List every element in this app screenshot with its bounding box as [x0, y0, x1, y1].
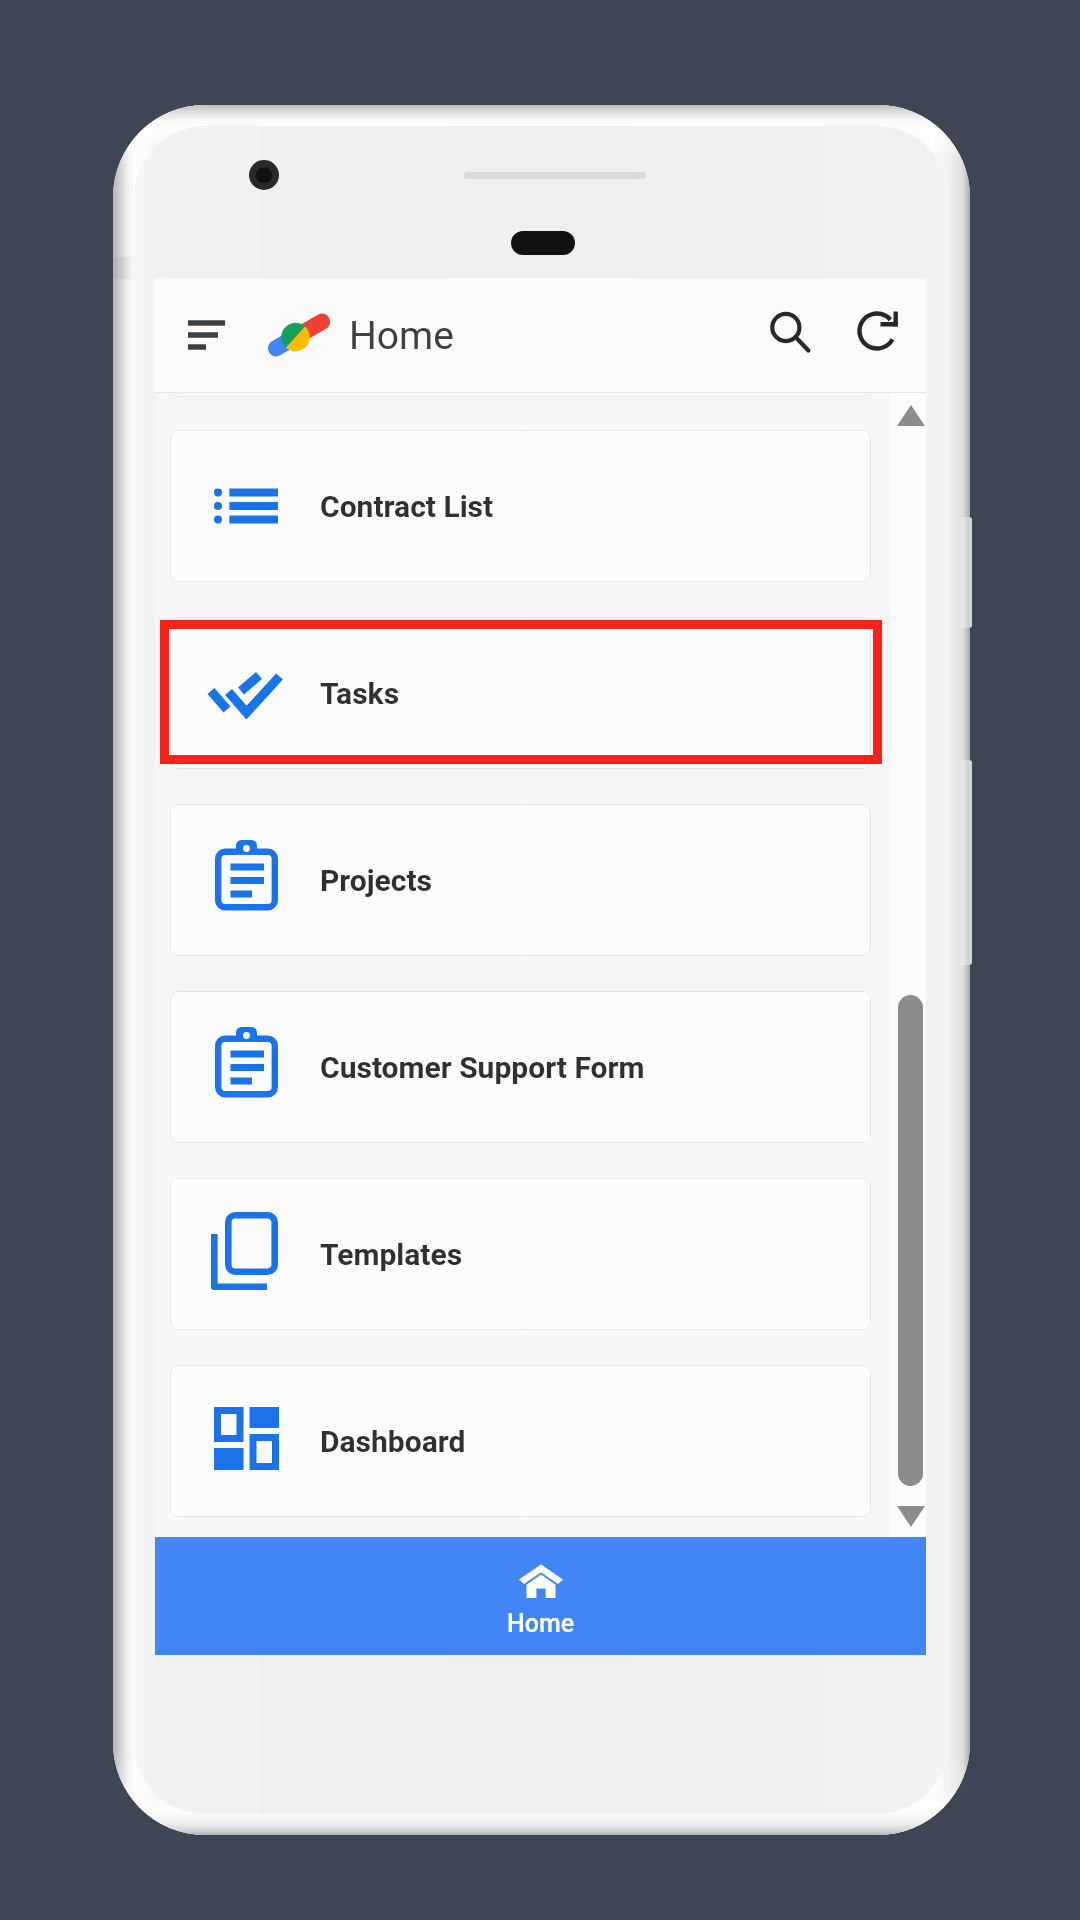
- button[interactable]: Home: [155, 1537, 926, 1655]
- button[interactable]: Dashboard: [170, 1365, 871, 1517]
- staticText: Templates: [320, 1237, 463, 1272]
- button[interactable]: Tasks: [170, 617, 871, 769]
- staticText: Home: [349, 313, 454, 359]
- button[interactable]: Templates: [170, 1178, 871, 1330]
- staticText: Projects: [320, 863, 433, 898]
- button[interactable]: Contract List: [170, 430, 871, 582]
- button[interactable]: Menu: [164, 300, 249, 370]
- button[interactable]: [170, 393, 871, 397]
- staticText: Dashboard: [320, 1424, 466, 1459]
- staticText: Tasks: [320, 676, 400, 711]
- button[interactable]: Refresh: [842, 295, 912, 365]
- button[interactable]: Projects: [170, 804, 871, 956]
- staticText: Customer Support Form: [320, 1050, 645, 1085]
- button[interactable]: Customer Support Form: [170, 991, 871, 1143]
- button[interactable]: Search: [755, 298, 825, 368]
- staticText: Contract List: [320, 489, 494, 524]
- staticText: Home: [507, 1609, 575, 1638]
